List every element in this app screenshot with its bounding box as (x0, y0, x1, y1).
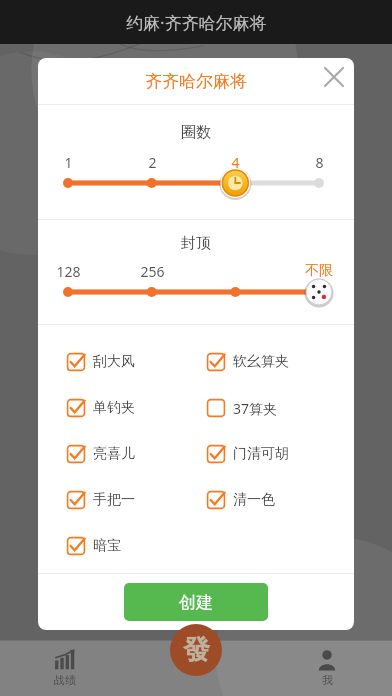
staticText: 清一色 (233, 491, 275, 509)
staticText: 128 (56, 262, 81, 281)
staticText: 8 (315, 153, 324, 172)
staticText: 刮大风 (93, 353, 135, 371)
staticText: 齐齐哈尔麻将 (145, 71, 247, 92)
button[interactable]: 128 (38, 262, 354, 308)
staticText: 单钓夹 (93, 399, 135, 417)
button[interactable]: 1 (38, 153, 354, 199)
staticText: 我 (322, 673, 333, 687)
button[interactable]: 我 (261, 640, 392, 696)
button[interactable]: 暗宝 (66, 536, 127, 556)
staticText: 封顶 (181, 234, 211, 253)
staticText: 256 (140, 262, 165, 281)
staticText: 创建 (179, 592, 213, 613)
staticText: 战绩 (54, 673, 76, 687)
staticText: 软幺算夹 (233, 353, 289, 371)
button[interactable]: 手把一 (66, 490, 141, 510)
staticText: 4 (231, 153, 240, 172)
button[interactable]: 单钓夹 (66, 398, 141, 418)
button[interactable]: 创建 (124, 583, 268, 621)
staticText: 暗宝 (93, 537, 121, 555)
staticText: 亮喜儿 (93, 445, 135, 463)
button[interactable]: 刮大风 (66, 352, 141, 372)
button[interactable]: 清一色 (206, 490, 281, 510)
button[interactable]: 战绩 (0, 640, 130, 696)
staticText: 2 (148, 153, 157, 172)
button[interactable]: 关闭 (314, 58, 354, 97)
staticText: 圈数 (181, 123, 211, 142)
button[interactable]: 发起 (170, 624, 222, 676)
staticText: 1 (64, 153, 73, 172)
button[interactable]: 门清可胡 (206, 444, 295, 464)
button[interactable]: 软幺算夹 (206, 352, 295, 372)
staticText: 37算夹 (233, 399, 278, 418)
staticText: 门清可胡 (233, 445, 289, 463)
staticText: 约麻·齐齐哈尔麻将 (126, 11, 267, 34)
button[interactable]: 亮喜儿 (66, 444, 141, 464)
button[interactable]: 37算夹 (206, 398, 284, 418)
staticText: 手把一 (93, 491, 135, 509)
staticText: 不限 (305, 262, 333, 280)
staticText: 發 (183, 633, 210, 667)
